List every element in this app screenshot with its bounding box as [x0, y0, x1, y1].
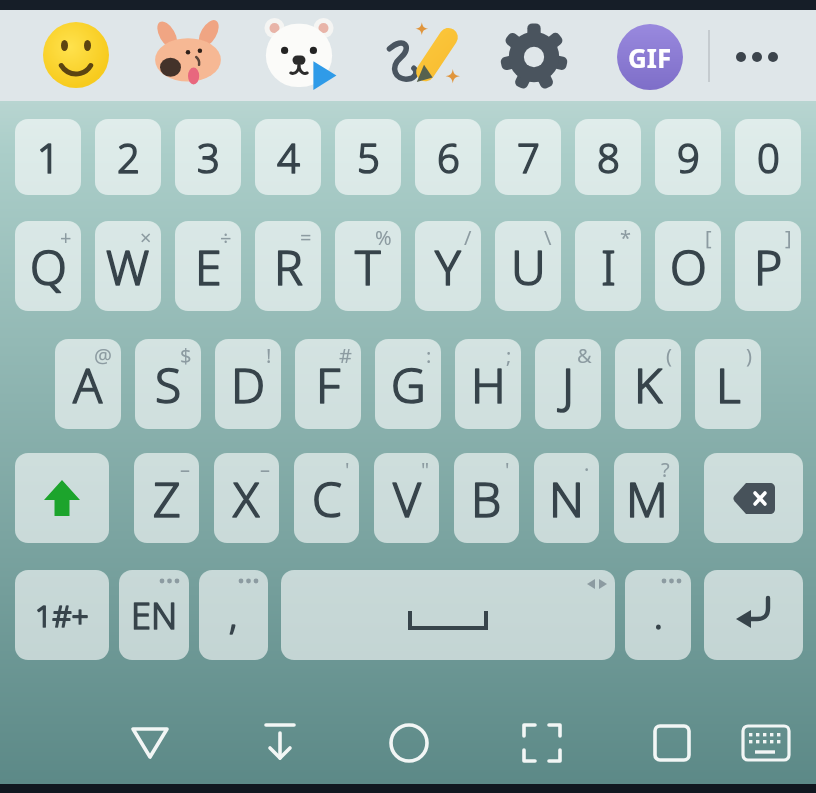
- button[interactable]: F: [295, 339, 361, 429]
- staticText: &: [577, 342, 592, 369]
- button[interactable]: A: [55, 339, 121, 429]
- button[interactable]: N: [534, 453, 599, 543]
- staticText: M: [626, 466, 668, 531]
- staticText: [: [705, 224, 712, 251]
- button[interactable]: 9: [655, 119, 721, 195]
- button[interactable]: I: [575, 221, 641, 311]
- button[interactable]: [281, 570, 615, 660]
- staticText: N: [549, 466, 584, 531]
- button[interactable]: [388, 20, 460, 92]
- staticText: J: [562, 352, 575, 417]
- staticText: 1#+: [35, 595, 89, 636]
- staticText: ]: [785, 224, 792, 251]
- button[interactable]: Y: [415, 221, 481, 311]
- button[interactable]: .: [625, 570, 691, 660]
- button[interactable]: C: [294, 453, 359, 543]
- button[interactable]: R: [255, 221, 321, 311]
- staticText: 1: [37, 130, 60, 184]
- staticText: A: [73, 352, 103, 417]
- button[interactable]: 2: [95, 119, 161, 195]
- button[interactable]: ,: [199, 570, 268, 660]
- staticText: 8: [597, 130, 620, 184]
- button[interactable]: [728, 40, 786, 74]
- button[interactable]: [642, 713, 702, 773]
- button[interactable]: H: [455, 339, 521, 429]
- button[interactable]: G: [375, 339, 441, 429]
- button[interactable]: EN: [119, 570, 189, 660]
- button[interactable]: 1: [15, 119, 81, 195]
- button[interactable]: S: [135, 339, 201, 429]
- button[interactable]: D: [215, 339, 281, 429]
- staticText: G: [391, 352, 426, 417]
- staticText: T: [355, 234, 381, 299]
- button[interactable]: 1#+: [15, 570, 109, 660]
- button[interactable]: [704, 453, 803, 543]
- button[interactable]: [704, 570, 803, 660]
- button[interactable]: [15, 453, 109, 543]
- button[interactable]: X: [214, 453, 279, 543]
- staticText: O: [670, 234, 707, 299]
- staticText: !: [266, 342, 272, 369]
- button[interactable]: [263, 18, 335, 90]
- staticText: J: [562, 352, 575, 417]
- button[interactable]: [736, 713, 796, 773]
- staticText: O: [670, 234, 707, 299]
- staticText: 0: [757, 130, 780, 184]
- button[interactable]: K: [615, 339, 681, 429]
- staticText: +: [60, 224, 72, 251]
- staticText: ": [421, 456, 430, 483]
- staticText: 8: [597, 130, 620, 184]
- staticText: S: [155, 352, 182, 417]
- staticText: /: [464, 224, 472, 251]
- button[interactable]: GIF: [617, 24, 683, 90]
- staticText: S: [155, 352, 182, 417]
- staticText: Z: [153, 466, 181, 531]
- button[interactable]: M: [614, 453, 679, 543]
- staticText: 5: [357, 130, 380, 184]
- button[interactable]: [153, 20, 223, 90]
- button[interactable]: 0: [735, 119, 801, 195]
- button[interactable]: P: [735, 221, 801, 311]
- staticText: \: [544, 224, 552, 251]
- staticText: P: [754, 234, 783, 299]
- staticText: W: [106, 234, 150, 299]
- button[interactable]: [120, 713, 180, 773]
- button[interactable]: 6: [415, 119, 481, 195]
- button[interactable]: V: [374, 453, 439, 543]
- button[interactable]: 5: [335, 119, 401, 195]
- staticText: Z: [153, 466, 181, 531]
- button[interactable]: O: [655, 221, 721, 311]
- staticText: ,: [229, 591, 238, 640]
- staticText: 1#+: [35, 595, 89, 636]
- button[interactable]: L: [695, 339, 761, 429]
- button[interactable]: Q: [15, 221, 81, 311]
- button[interactable]: E: [175, 221, 241, 311]
- button[interactable]: Z: [134, 453, 199, 543]
- button[interactable]: [512, 713, 572, 773]
- staticText: V: [393, 466, 421, 531]
- staticText: N: [549, 466, 584, 531]
- button[interactable]: W: [95, 221, 161, 311]
- button[interactable]: 4: [255, 119, 321, 195]
- staticText: M: [626, 466, 668, 531]
- button[interactable]: [379, 713, 439, 773]
- staticText: L: [716, 352, 741, 417]
- button[interactable]: B: [454, 453, 519, 543]
- staticText: 7: [517, 130, 540, 184]
- button[interactable]: T: [335, 221, 401, 311]
- staticText: 6: [437, 130, 460, 184]
- button[interactable]: [499, 22, 569, 92]
- staticText: ·: [584, 456, 590, 483]
- staticText: Q: [30, 234, 67, 299]
- staticText: R: [274, 234, 303, 299]
- button[interactable]: [250, 713, 310, 773]
- button[interactable]: J: [535, 339, 601, 429]
- button[interactable]: 7: [495, 119, 561, 195]
- button[interactable]: 3: [175, 119, 241, 195]
- button[interactable]: U: [495, 221, 561, 311]
- button[interactable]: [43, 22, 109, 88]
- staticText: ×: [140, 224, 152, 251]
- staticText: ;: [506, 342, 512, 369]
- button[interactable]: 8: [575, 119, 641, 195]
- staticText: #: [339, 342, 352, 369]
